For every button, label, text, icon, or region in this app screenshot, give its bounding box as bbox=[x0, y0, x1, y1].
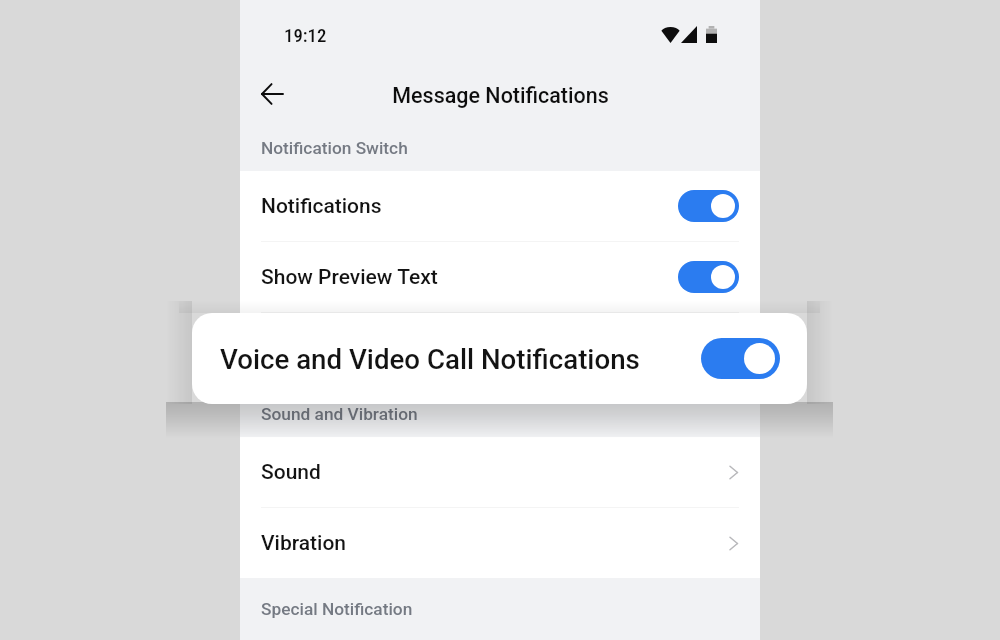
staticText: Voice and Video Call Notifications bbox=[261, 336, 580, 361]
button[interactable]: Notifications bbox=[240, 171, 760, 241]
button[interactable]: Voice and Video Call Notifications bbox=[240, 313, 760, 383]
staticText: Vibration bbox=[261, 531, 347, 556]
staticText: Special Notification bbox=[261, 599, 413, 619]
staticText: Sound bbox=[261, 460, 321, 485]
button[interactable]: Toggle on bbox=[678, 261, 739, 293]
staticText: Voice and Video Call Notifications bbox=[220, 343, 640, 375]
button[interactable]: Show Preview Text bbox=[240, 242, 760, 312]
staticText: Notification Switch bbox=[261, 138, 408, 158]
button[interactable]: Toggle on bbox=[701, 338, 780, 379]
button[interactable]: Sound bbox=[240, 437, 760, 507]
staticText: Notifications bbox=[261, 194, 382, 219]
button[interactable]: Voice and Video Call Notifications bbox=[192, 313, 807, 404]
staticText: Message Notifications bbox=[392, 83, 609, 108]
staticText: Sound and Vibration bbox=[261, 404, 418, 424]
button[interactable]: Toggle on bbox=[678, 190, 739, 222]
button[interactable]: Back bbox=[250, 72, 294, 116]
button[interactable]: Toggle on bbox=[678, 332, 739, 364]
staticText: Show Preview Text bbox=[261, 265, 438, 290]
button[interactable]: Vibration bbox=[240, 508, 760, 578]
staticText: 19:12 bbox=[284, 25, 327, 47]
